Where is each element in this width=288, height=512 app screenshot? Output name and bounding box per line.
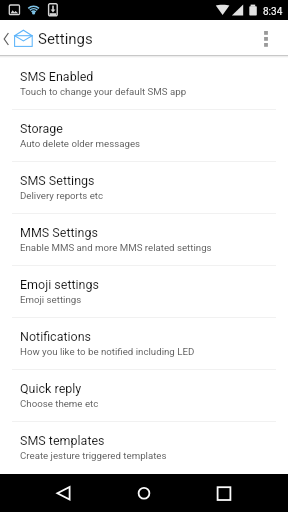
button[interactable]: Back (40, 474, 88, 512)
staticText: Touch to change your default SMS app (20, 86, 187, 97)
button[interactable]: Emoji settings (0, 266, 288, 317)
button[interactable]: MMS Settings (0, 214, 288, 265)
staticText: Quick reply (20, 381, 82, 396)
staticText: Notifications (20, 329, 92, 344)
button[interactable]: Home (120, 474, 168, 512)
button[interactable]: Notifications (0, 318, 288, 369)
button[interactable]: SMS Enabled (0, 58, 288, 109)
staticText: Choose theme etc (20, 398, 99, 409)
button[interactable]: Navigate up (0, 20, 36, 57)
staticText: Delivery reports etc (20, 190, 104, 201)
button[interactable]: SMS Settings (0, 162, 288, 213)
button[interactable]: Recent apps (200, 474, 248, 512)
staticText: Auto delete older messages (20, 138, 141, 149)
staticText: Emoji settings (20, 294, 82, 305)
staticText: 8:34 (263, 6, 283, 18)
staticText: MMS Settings (20, 225, 98, 240)
staticText: SMS Settings (20, 173, 95, 188)
staticText: Enable MMS and more MMS related settings (20, 242, 212, 253)
staticText: Emoji settings (20, 277, 99, 292)
staticText: Settings (38, 30, 93, 48)
button[interactable]: Quick reply (0, 370, 288, 421)
staticText: SMS Enabled (20, 69, 94, 84)
staticText: Create jesture triggered templates (20, 450, 167, 461)
staticText: SMS templates (20, 433, 105, 448)
button[interactable]: Storage (0, 110, 288, 161)
staticText: How you like to be notified including LE… (20, 346, 195, 357)
button[interactable]: More options (249, 20, 283, 57)
button[interactable]: SMS templates (0, 422, 288, 473)
staticText: Storage (20, 121, 63, 136)
